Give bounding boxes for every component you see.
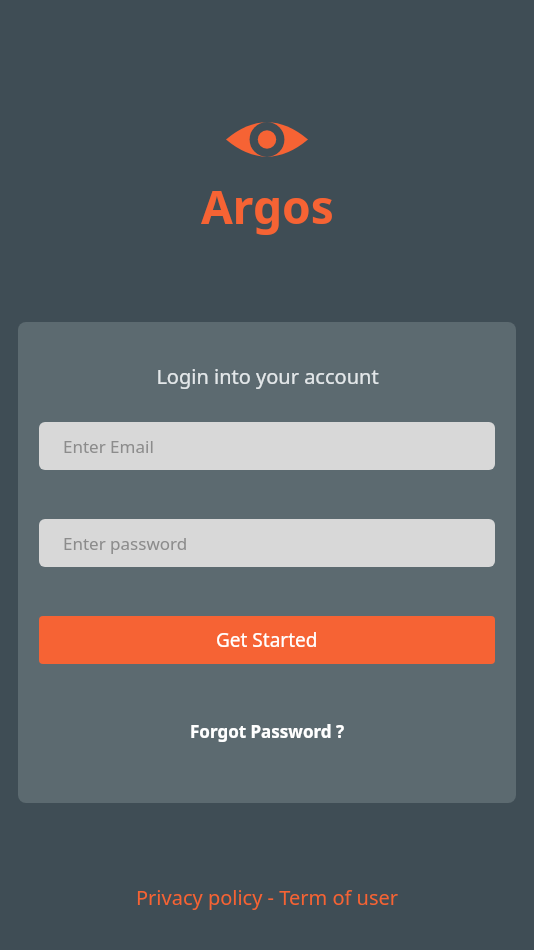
- staticText: Enter password: [63, 532, 188, 555]
- staticText: Login into your account: [156, 363, 379, 390]
- staticText: Get Started: [216, 627, 318, 653]
- staticText: Forgot Password ?: [190, 720, 345, 743]
- button[interactable]: Enter password: [39, 519, 495, 567]
- staticText: Privacy policy - Term of user: [136, 884, 399, 911]
- button[interactable]: Privacy policy - Term of user: [130, 878, 405, 917]
- other: Argos logo: [226, 118, 308, 161]
- button[interactable]: Get Started: [39, 616, 495, 664]
- staticText: Argos: [201, 175, 334, 238]
- staticText: Enter Email: [63, 435, 154, 458]
- button[interactable]: Forgot Password ?: [182, 712, 353, 751]
- button[interactable]: Enter Email: [39, 422, 495, 470]
